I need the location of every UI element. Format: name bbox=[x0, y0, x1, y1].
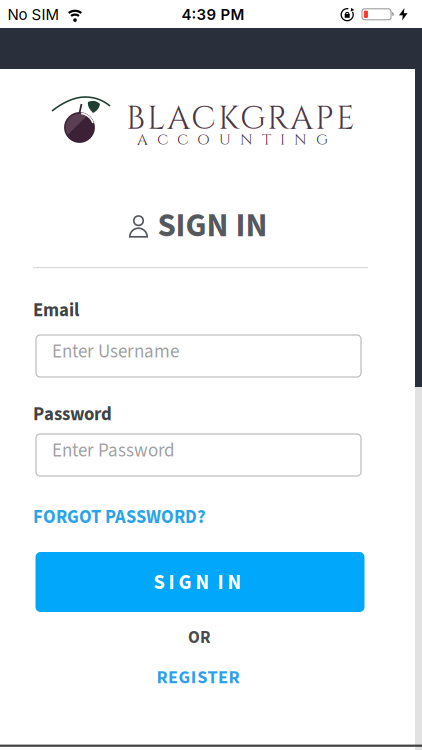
staticText: FORGOT PASSWORD? bbox=[33, 504, 206, 530]
staticText: Email bbox=[33, 297, 79, 324]
staticText: S I G N I N bbox=[153, 568, 241, 597]
staticText: N bbox=[294, 130, 307, 150]
staticText: U bbox=[219, 130, 231, 150]
staticText: C bbox=[177, 130, 188, 150]
staticText: 4:39 PM bbox=[181, 5, 244, 23]
staticText: N bbox=[240, 130, 253, 150]
staticText: SIGN IN bbox=[157, 202, 267, 249]
staticText: Enter Password bbox=[52, 437, 175, 464]
staticText: I bbox=[280, 130, 285, 150]
staticText: REGISTER bbox=[157, 664, 239, 691]
staticText: Enter Username bbox=[52, 338, 179, 365]
staticText: C bbox=[157, 130, 168, 150]
staticText: G bbox=[316, 130, 328, 150]
staticText: T bbox=[262, 130, 271, 150]
staticText: No SIM bbox=[7, 5, 59, 23]
staticText: O bbox=[197, 130, 210, 150]
staticText: A bbox=[137, 130, 148, 150]
staticText: OR bbox=[188, 625, 211, 650]
staticText: Password bbox=[33, 401, 112, 428]
staticText: BLACKGRAPE bbox=[126, 97, 355, 141]
